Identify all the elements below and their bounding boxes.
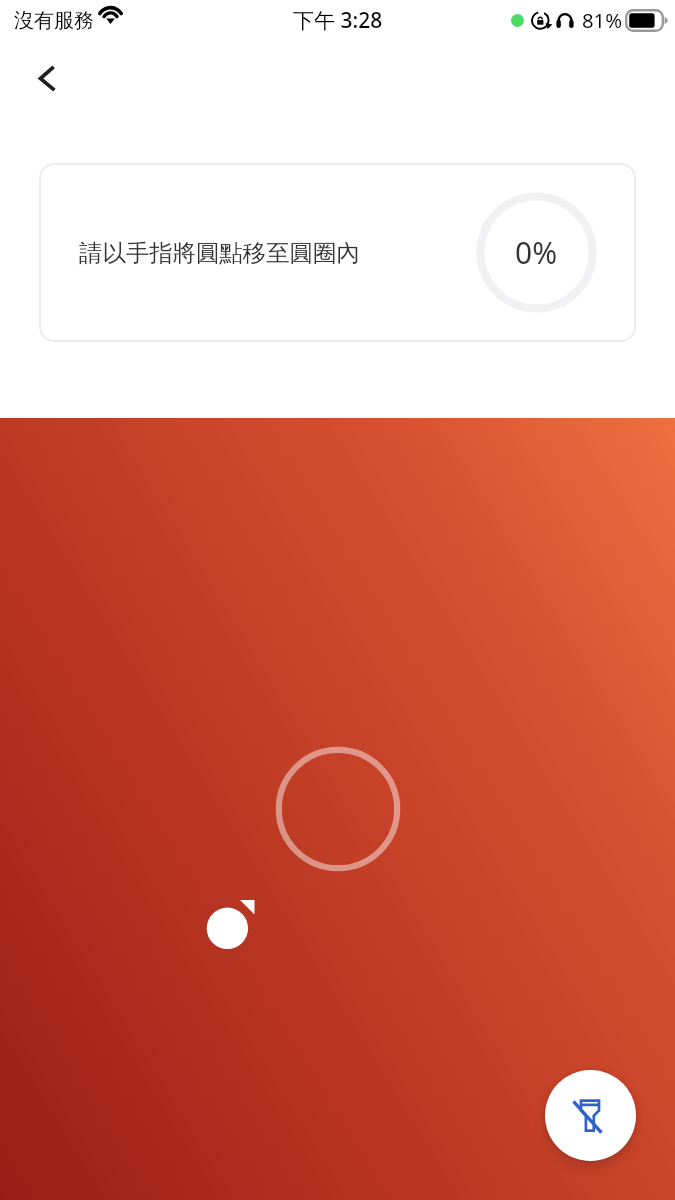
staticText: 請以手指將圓點移至圓圈內 xyxy=(79,238,360,267)
button[interactable]: Calibration area: drag the dot into the … xyxy=(0,418,675,1200)
button[interactable]: Toggle flashlight xyxy=(545,1070,636,1161)
button[interactable]: Back xyxy=(23,56,67,100)
staticText: 沒有服務 xyxy=(14,8,94,33)
staticText: 81% xyxy=(582,6,623,34)
staticText: 下午 3:28 xyxy=(293,6,383,35)
staticText: 0% xyxy=(515,232,558,273)
button[interactable]: 請以手指將圓點移至圓圈內 xyxy=(39,163,636,342)
